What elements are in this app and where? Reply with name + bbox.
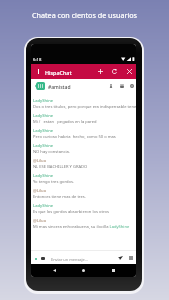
staticText: 6:18 xyxy=(33,57,42,63)
button[interactable]: Enviar un mensaje... xyxy=(51,257,88,262)
button[interactable]: Profile xyxy=(106,82,115,90)
button[interactable]: Attach xyxy=(127,254,135,262)
staticText: Es que los gordos absorbieron los otros xyxy=(33,209,109,215)
button[interactable]: Channel amistad xyxy=(35,82,45,90)
button[interactable]: Home xyxy=(77,264,90,277)
staticText: @Lilua xyxy=(33,158,46,164)
staticText: @Lilua xyxy=(33,218,46,224)
staticText: Mi / estan pegados en la pared xyxy=(33,119,97,125)
button[interactable]: Send xyxy=(116,254,124,262)
staticText: LadyShine xyxy=(33,113,54,119)
button[interactable]: Refresh xyxy=(109,64,120,79)
button[interactable]: Open menu xyxy=(34,64,43,79)
staticText: Chatea con cientos de usuarios xyxy=(0,10,169,20)
staticText: Entonces tiene mas de tres. xyxy=(33,194,86,200)
staticText: LadyShine xyxy=(33,128,54,134)
button[interactable]: Add channel xyxy=(95,64,106,79)
button[interactable]: Online status xyxy=(32,255,39,262)
button[interactable]: #amistad xyxy=(48,84,71,91)
button[interactable]: Users xyxy=(117,82,126,90)
button[interactable]: Settings xyxy=(127,82,136,90)
staticText: @Lilua xyxy=(33,188,46,194)
staticText: Mi mas sincera enhorabuena, su ilocilla … xyxy=(33,224,130,230)
staticText: LadyShine xyxy=(33,173,54,179)
button[interactable]: Recent apps xyxy=(107,264,120,277)
button[interactable]: Close xyxy=(124,64,135,79)
staticText: Pero curioso habria hecho, como 50 o mas xyxy=(33,134,116,140)
staticText: NO hay constancia. xyxy=(33,149,71,155)
staticText: Yo tengo tres gordos. xyxy=(33,179,75,185)
staticText: HispaChat xyxy=(45,69,72,76)
staticText: LadyShine xyxy=(33,98,54,104)
button[interactable]: Back xyxy=(48,264,61,277)
staticText: LadyShine xyxy=(33,203,54,209)
staticText: LadyShine xyxy=(33,143,54,149)
button[interactable]: Emoji xyxy=(39,255,46,262)
staticText: NL ESE BACHILLER Y GRADO xyxy=(33,164,88,170)
staticText: Dos o tres titulos, pero porque era indi… xyxy=(33,104,136,110)
